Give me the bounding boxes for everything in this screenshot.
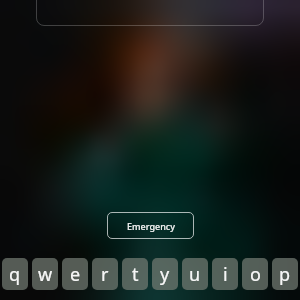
button[interactable]: Emergency: [107, 212, 194, 239]
button[interactable]: i: [212, 258, 238, 290]
button[interactable]: u: [182, 258, 208, 290]
staticText: p: [279, 262, 291, 287]
staticText: w: [38, 262, 53, 287]
staticText: y: [160, 262, 170, 287]
staticText: Emergency: [127, 220, 175, 232]
button[interactable]: q: [2, 258, 28, 290]
staticText: r: [101, 262, 109, 287]
staticText: q: [9, 262, 21, 287]
button[interactable]: e: [62, 258, 88, 290]
button[interactable]: o: [242, 258, 268, 290]
button[interactable]: [36, 0, 264, 26]
staticText: u: [189, 262, 201, 287]
button[interactable]: w: [32, 258, 58, 290]
staticText: o: [250, 262, 261, 287]
staticText: t: [132, 262, 139, 287]
button[interactable]: y: [152, 258, 178, 290]
button[interactable]: r: [92, 258, 118, 290]
staticText: i: [223, 262, 228, 287]
button[interactable]: p: [272, 258, 298, 290]
button[interactable]: t: [122, 258, 148, 290]
staticText: e: [70, 262, 81, 287]
